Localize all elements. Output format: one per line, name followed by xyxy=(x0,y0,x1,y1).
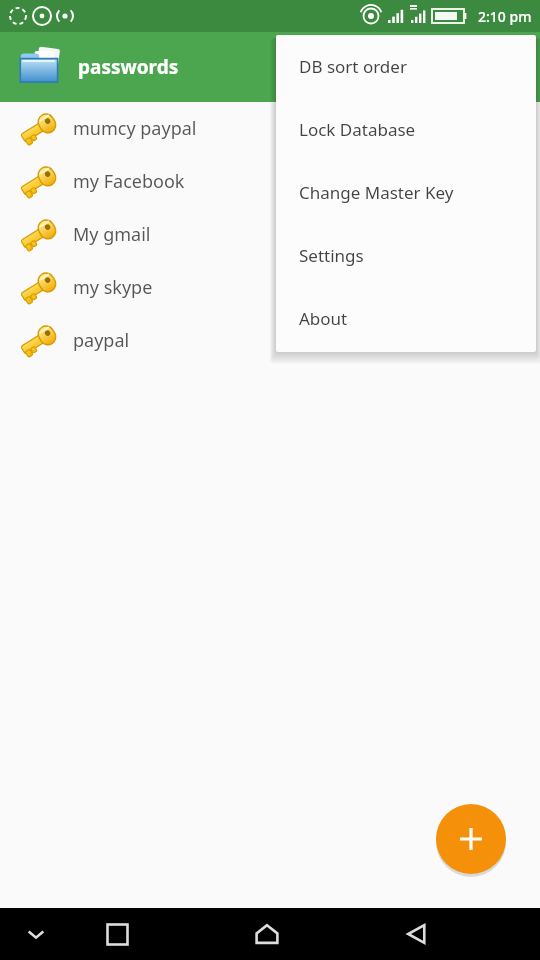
staticText: DB sort order xyxy=(299,55,407,78)
button[interactable]: paypal xyxy=(0,314,540,367)
button[interactable]: Add password xyxy=(436,804,506,874)
button[interactable]: My gmail xyxy=(0,208,540,261)
button[interactable]: Recents xyxy=(72,908,162,960)
staticText: my skype xyxy=(73,275,153,300)
button[interactable]: Hide xyxy=(0,908,72,960)
button[interactable]: About xyxy=(276,287,536,350)
staticText: passwords xyxy=(78,54,179,80)
staticText: Settings xyxy=(299,244,364,267)
staticText: Change Master Key xyxy=(299,181,454,204)
button[interactable]: mumcy paypal xyxy=(0,102,540,155)
button[interactable]: Back xyxy=(372,908,462,960)
staticText: 2:10 pm xyxy=(478,7,532,26)
staticText: mumcy paypal xyxy=(73,116,197,141)
button[interactable]: my skype xyxy=(0,261,540,314)
staticText: Lock Database xyxy=(299,118,416,141)
staticText: About xyxy=(299,307,348,330)
button[interactable]: Change Master Key xyxy=(276,161,536,224)
staticText: My gmail xyxy=(73,222,151,247)
button[interactable]: my Facebook xyxy=(0,155,540,208)
button[interactable]: Settings xyxy=(276,224,536,287)
staticText: paypal xyxy=(73,328,130,353)
staticText: my Facebook xyxy=(73,169,185,194)
button[interactable]: Lock Database xyxy=(276,98,536,161)
button[interactable]: Home xyxy=(222,908,312,960)
button[interactable]: DB sort order xyxy=(276,35,536,98)
